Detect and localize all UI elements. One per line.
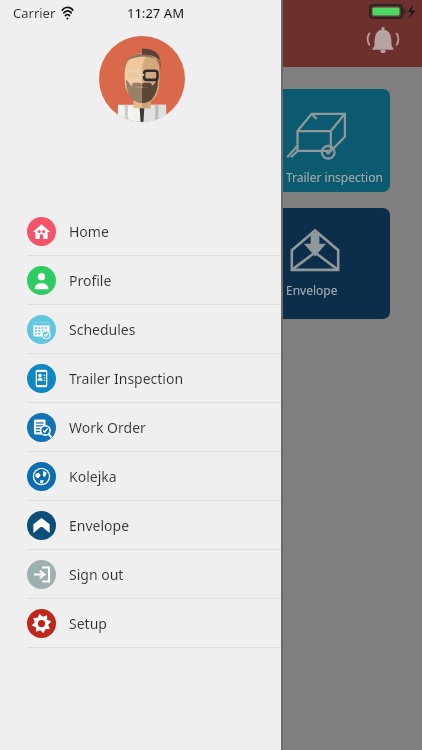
staticText: Kolejka bbox=[69, 467, 117, 486]
button[interactable]: Envelope bbox=[0, 208, 390, 319]
button[interactable]: Home bbox=[0, 207, 283, 255]
staticText: Envelope bbox=[286, 282, 338, 298]
staticText: Profile bbox=[69, 271, 112, 290]
staticText: Trailer inspection bbox=[286, 169, 383, 185]
staticText: Work Order bbox=[69, 418, 146, 437]
staticText: Sign out bbox=[69, 565, 124, 584]
button[interactable]: Schedules bbox=[0, 305, 283, 353]
staticText: Home bbox=[69, 222, 109, 241]
button[interactable]: Sign out bbox=[0, 550, 283, 598]
button[interactable]: Profile bbox=[0, 256, 283, 304]
button[interactable]: Envelope bbox=[0, 501, 283, 549]
button[interactable]: Trailer Inspection bbox=[0, 354, 283, 402]
staticText: Carrier bbox=[13, 4, 56, 22]
button[interactable]: Notifications bbox=[360, 19, 406, 65]
staticText: Envelope bbox=[69, 516, 130, 535]
staticText: Trailer Inspection bbox=[69, 369, 184, 388]
staticText: 11:27 AM bbox=[127, 4, 185, 22]
staticText: Schedules bbox=[69, 320, 136, 339]
button[interactable]: Kolejka bbox=[0, 452, 283, 500]
button[interactable]: Work Order bbox=[0, 403, 283, 451]
button[interactable]: Setup bbox=[0, 599, 283, 647]
button[interactable]: Trailer inspection bbox=[0, 89, 390, 192]
staticText: Setup bbox=[69, 614, 107, 633]
